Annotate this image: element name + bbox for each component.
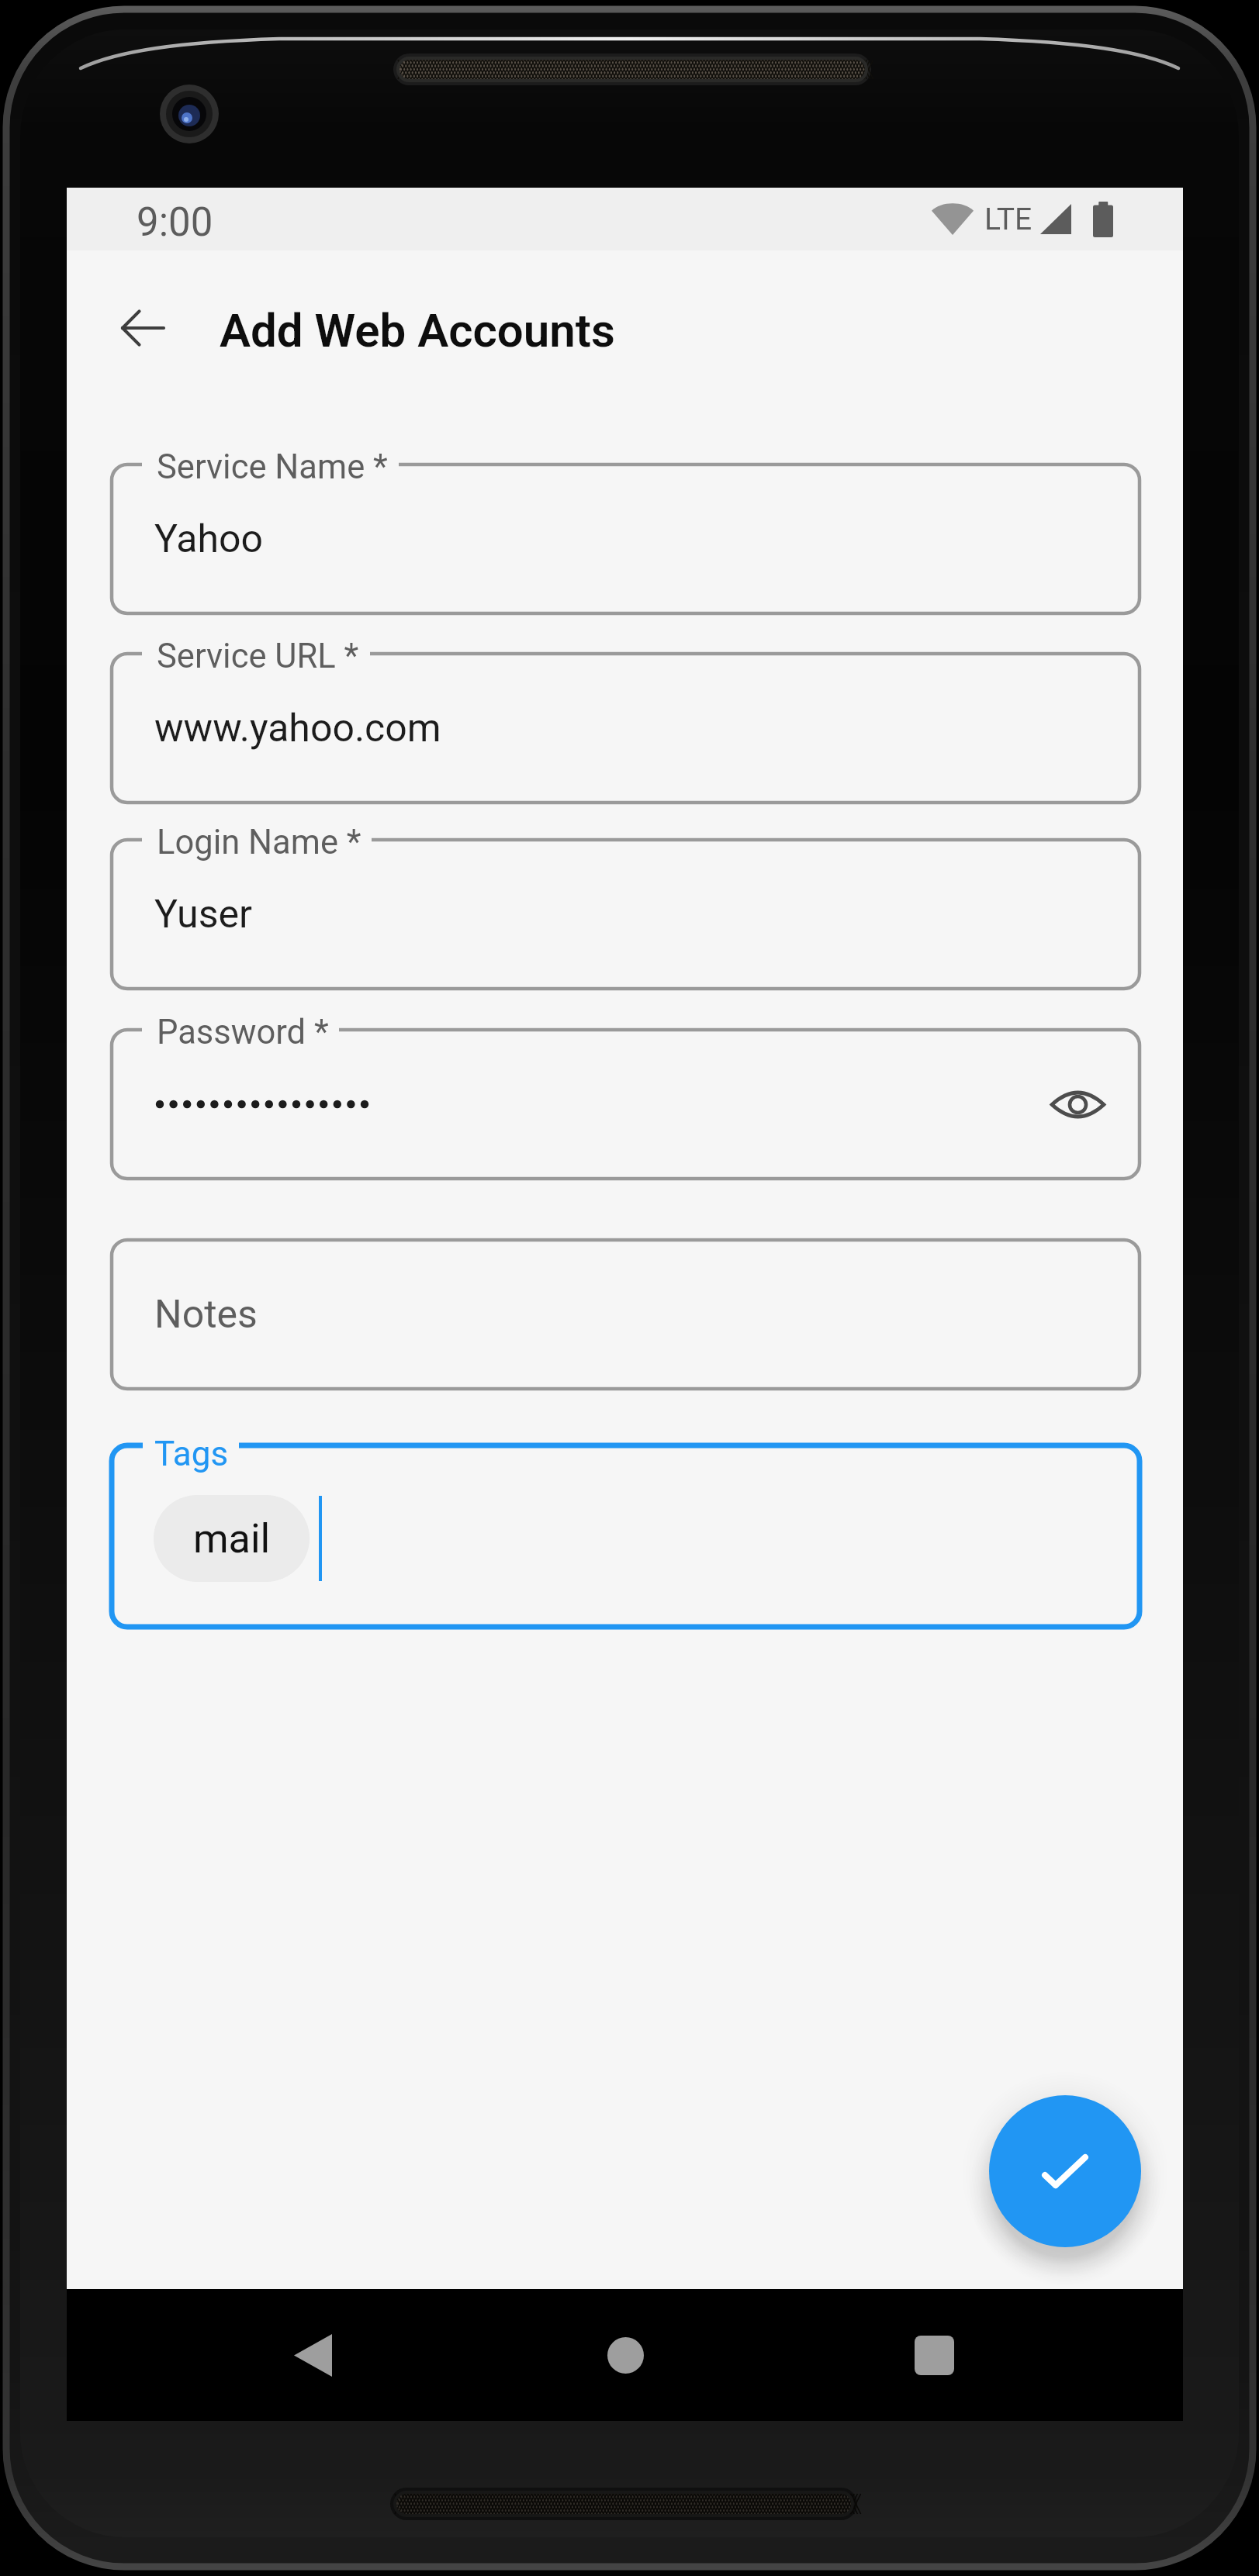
staticText: www.yahoo.com — [154, 706, 441, 751]
button[interactable]: Show password — [1035, 1062, 1120, 1147]
button[interactable]: Service URL * — [112, 654, 1140, 803]
button[interactable]: Login Name * — [112, 840, 1140, 989]
button[interactable]: Tags — [112, 1445, 1140, 1627]
staticText: Yahoo — [154, 516, 264, 562]
staticText: Login Name * — [157, 823, 361, 862]
staticText: Service URL * — [157, 637, 359, 676]
button[interactable]: Navigate up — [82, 289, 203, 367]
staticText: Tags — [154, 1434, 229, 1474]
staticText: Yuser — [154, 892, 252, 938]
button[interactable]: Service Name * — [112, 464, 1140, 613]
button[interactable]: Save account — [989, 2095, 1141, 2247]
button[interactable]: Password * — [112, 1030, 1140, 1179]
staticText: Add Web Accounts — [220, 303, 615, 357]
button[interactable]: Back — [260, 2302, 365, 2408]
button[interactable]: Home — [572, 2302, 678, 2408]
button[interactable]: Notes — [112, 1240, 1140, 1389]
staticText: 9:00 — [137, 199, 213, 246]
staticText: Password * — [157, 1013, 329, 1052]
staticText: LTE — [984, 202, 1032, 237]
staticText: mail — [193, 1515, 271, 1563]
button[interactable]: Recent apps — [881, 2302, 987, 2408]
staticText: Notes — [154, 1292, 258, 1338]
button[interactable]: mail — [154, 1495, 310, 1582]
staticText: Service Name * — [157, 447, 388, 487]
